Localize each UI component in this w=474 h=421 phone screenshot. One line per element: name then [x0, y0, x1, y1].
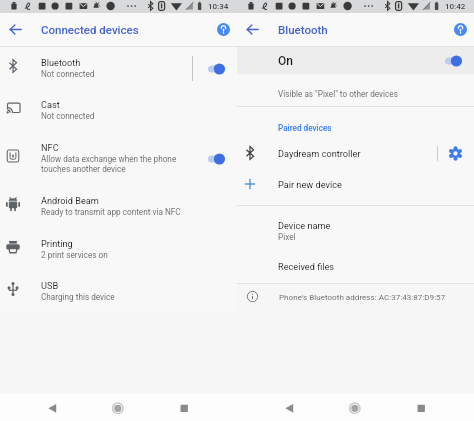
staticText: Allow data exchange when the phone	[41, 154, 177, 164]
button[interactable]	[208, 63, 225, 75]
button[interactable]: Help	[217, 23, 230, 36]
staticText: Bluetooth	[278, 23, 328, 36]
staticText: Printing	[41, 238, 73, 249]
button[interactable]: Device settings	[449, 147, 462, 160]
button[interactable]: Help	[454, 23, 467, 36]
staticText: Ready to transmit app content via NFC	[41, 207, 181, 217]
button[interactable]: Daydream controller	[237, 138, 474, 168]
staticText: Daydream controller	[278, 148, 361, 159]
button[interactable]: Phone's Bluetooth address: AC:37:43:87:D…	[237, 284, 474, 312]
staticText: Paired devices	[278, 123, 332, 133]
staticText: touches another device	[41, 164, 126, 174]
button[interactable]: Navigate up	[245, 22, 260, 37]
staticText: 10:34	[208, 2, 229, 11]
button[interactable]: Home	[343, 396, 367, 420]
staticText: 10:42	[445, 2, 466, 11]
button[interactable]: Received files	[237, 249, 474, 283]
button[interactable]: USB	[0, 270, 237, 313]
staticText: Not connected	[41, 69, 95, 79]
button[interactable]: Back	[40, 396, 64, 420]
button[interactable]: Android Beam	[0, 185, 237, 229]
button[interactable]: Navigate up	[8, 22, 23, 37]
button[interactable]: On	[237, 47, 474, 74]
button[interactable]: Home	[106, 396, 130, 420]
button[interactable]: Recent apps	[409, 396, 433, 420]
button[interactable]: Bluetooth	[0, 47, 237, 90]
staticText: Connected devices	[41, 23, 139, 36]
staticText: USB	[41, 280, 59, 291]
staticText: On	[278, 54, 293, 68]
staticText: Not connected	[41, 111, 95, 121]
staticText: 2 print services on	[41, 250, 108, 260]
staticText: Received files	[278, 261, 335, 272]
button[interactable]	[208, 153, 225, 165]
staticText: Phone's Bluetooth address: AC:37:43:87:D…	[279, 292, 446, 301]
button[interactable]	[445, 55, 462, 67]
staticText: Android Beam	[41, 195, 99, 206]
button[interactable]: Printing	[0, 229, 237, 270]
button[interactable]: Back	[277, 396, 301, 420]
staticText: Pixel	[278, 232, 296, 242]
staticText: Bluetooth	[41, 57, 81, 68]
button[interactable]: NFC	[0, 132, 237, 185]
staticText: Visible as "Pixel" to other devices	[278, 89, 398, 99]
button[interactable]: Recent apps	[172, 396, 196, 420]
staticText: Charging this device	[41, 292, 115, 302]
button[interactable]: Device name	[237, 206, 474, 249]
staticText: Cast	[41, 99, 60, 110]
button[interactable]: Cast	[0, 90, 237, 132]
staticText: Pair new device	[278, 179, 342, 190]
staticText: NFC	[41, 142, 59, 153]
button[interactable]: Pair new device	[237, 168, 474, 198]
staticText: Device name	[278, 220, 331, 231]
